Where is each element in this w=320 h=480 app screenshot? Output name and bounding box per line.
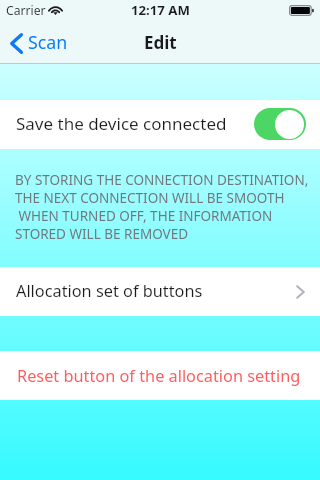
staticText: Allocation set of buttons xyxy=(16,280,203,302)
button[interactable]: Back xyxy=(0,20,78,64)
button[interactable]: Allocation set of buttons xyxy=(0,267,320,316)
staticText: THE NEXT CONNECTION WILL BE SMOOTH xyxy=(15,189,285,207)
staticText: Edit xyxy=(144,31,177,54)
staticText: STORED WILL BE REMOVED xyxy=(15,225,189,243)
staticText: 12:17 AM xyxy=(131,1,190,19)
staticText: Carrier xyxy=(6,2,46,19)
button[interactable]: Save the device connected xyxy=(0,100,320,149)
staticText: Scan xyxy=(28,30,68,54)
staticText: BY STORING THE CONNECTION DESTINATION, xyxy=(15,171,309,189)
staticText: Save the device connected xyxy=(16,112,227,135)
button[interactable]: Save the device connected xyxy=(254,108,306,140)
button[interactable]: Reset button of the allocation setting xyxy=(0,351,320,400)
staticText: WHEN TURNED OFF, THE INFORMATION xyxy=(15,207,273,225)
staticText: Reset button of the allocation setting xyxy=(17,365,301,387)
other: Back xyxy=(10,33,23,54)
other: Open xyxy=(296,285,305,299)
